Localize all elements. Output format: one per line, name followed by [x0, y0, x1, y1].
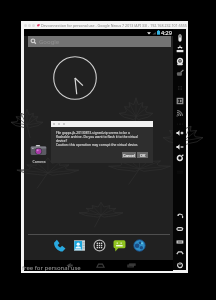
staticText: Devconnection for personal use - Google … — [41, 23, 187, 28]
button[interactable]: Power off — [173, 259, 186, 271]
button[interactable]: Apps — [91, 237, 107, 253]
staticText: Camera — [32, 159, 46, 164]
button[interactable]: Cancel — [122, 152, 136, 158]
staticText: Google — [39, 38, 60, 46]
staticText: 4:29 — [161, 29, 172, 36]
button[interactable]: Volume down — [173, 141, 186, 153]
button[interactable]: Messaging — [111, 237, 127, 253]
button[interactable]: Zoom — [173, 82, 186, 94]
button[interactable]: Camera — [27, 143, 50, 164]
button[interactable]: Location — [173, 43, 186, 55]
button[interactable]: Phone — [51, 237, 67, 253]
button[interactable]: Google — [28, 36, 171, 47]
button[interactable]: Overview — [173, 236, 186, 248]
button[interactable]: Recents — [122, 260, 140, 271]
staticText: OK — [140, 153, 146, 158]
button[interactable]: Back — [173, 210, 186, 222]
staticText: File gapps-jb-20130813-signed.zip seems … — [56, 131, 139, 147]
staticText: free for personal use — [22, 264, 81, 272]
button[interactable]: Cellular — [173, 107, 186, 119]
button[interactable]: Power — [173, 32, 186, 44]
button[interactable]: Contacts — [71, 237, 87, 253]
button[interactable]: Volume up — [173, 127, 186, 139]
button[interactable]: Screenshot — [173, 95, 186, 107]
button[interactable]: Home — [91, 260, 109, 271]
button[interactable]: OK — [137, 152, 148, 158]
button[interactable]: Rotate — [173, 152, 186, 164]
button[interactable]: Browser — [131, 237, 147, 253]
button[interactable]: Back — [60, 260, 78, 271]
button[interactable]: Home — [173, 247, 186, 259]
button[interactable]: Home screen — [173, 223, 186, 235]
staticText: Cancel — [123, 153, 135, 158]
button[interactable]: Rotate right — [173, 67, 186, 79]
button[interactable]: Rotate left — [173, 56, 186, 68]
